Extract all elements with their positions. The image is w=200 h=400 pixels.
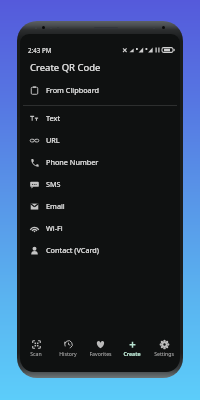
button[interactable]: Wi-Fi <box>20 217 180 239</box>
staticText: From Clipboard <box>46 85 100 95</box>
staticText: SMS <box>46 179 61 189</box>
staticText: Text <box>46 113 61 123</box>
button[interactable]: Scan <box>20 331 52 365</box>
button[interactable]: URL <box>20 129 180 151</box>
staticText: 2:43 PM <box>28 46 52 54</box>
staticText: History <box>59 350 77 357</box>
button[interactable]: Contact (VCard) <box>20 239 180 261</box>
staticText: Wi-Fi <box>46 223 63 233</box>
button[interactable]: Settings <box>148 331 180 365</box>
button[interactable]: Phone Number <box>20 151 180 173</box>
staticText: Phone Number <box>46 157 99 167</box>
button[interactable]: From Clipboard <box>20 79 180 101</box>
button[interactable]: SMS <box>20 173 180 195</box>
staticText: Create <box>123 350 141 357</box>
button[interactable]: Email <box>20 195 180 217</box>
button[interactable]: History <box>52 331 84 365</box>
staticText: Settings <box>154 350 174 357</box>
button[interactable]: Favorites <box>84 331 116 365</box>
staticText: Create QR Code <box>30 61 101 74</box>
button[interactable]: Text <box>20 107 180 129</box>
staticText: Scan <box>30 350 42 357</box>
staticText: URL <box>46 135 60 145</box>
staticText: Favorites <box>89 350 112 357</box>
staticText: Email <box>46 201 65 211</box>
button[interactable]: Create <box>116 331 148 365</box>
staticText: Contact (VCard) <box>46 245 100 255</box>
